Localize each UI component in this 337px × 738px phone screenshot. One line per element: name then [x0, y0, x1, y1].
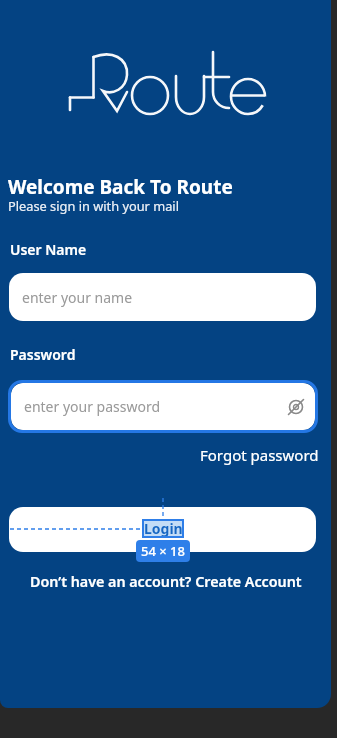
- button[interactable]: Forgot password: [200, 445, 319, 465]
- staticText: 54 × 18: [141, 542, 185, 560]
- button[interactable]: enter your name: [9, 273, 316, 321]
- staticText: enter your password: [24, 397, 161, 416]
- staticText: Welcome Back To Route: [8, 174, 233, 200]
- button[interactable]: enter your password: [11, 383, 315, 430]
- button[interactable]: [9, 507, 316, 552]
- staticText: Please sign in with your mail: [8, 197, 179, 214]
- staticText: Password: [10, 345, 76, 364]
- staticText: Login: [144, 519, 183, 538]
- staticText: enter your name: [22, 288, 133, 307]
- staticText: User Name: [10, 240, 87, 259]
- button[interactable]: Don’t have an account? Create Account: [30, 572, 302, 591]
